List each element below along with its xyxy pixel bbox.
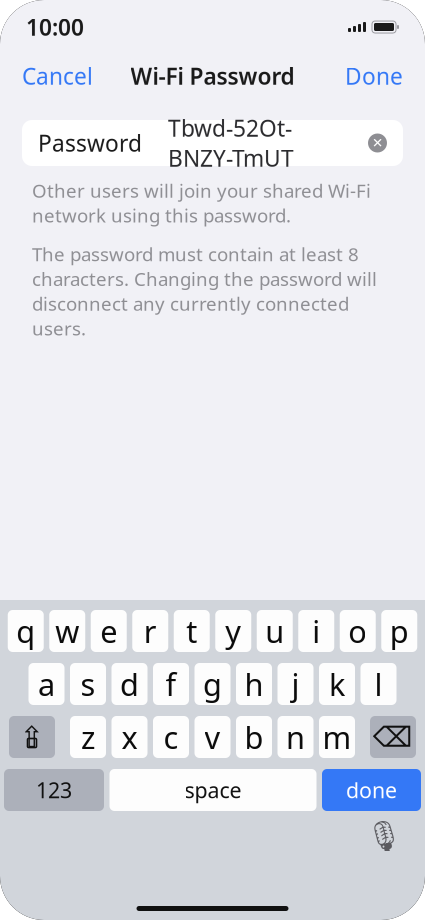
staticText: y — [225, 611, 241, 651]
staticText: l — [374, 664, 382, 704]
staticText: 🎙 — [365, 819, 402, 853]
staticText: b — [244, 717, 263, 757]
button[interactable]: Shift — [9, 716, 55, 758]
staticText: c — [163, 717, 178, 757]
button[interactable]: q — [8, 610, 44, 652]
staticText: v — [204, 717, 220, 757]
staticText: j — [291, 664, 299, 704]
staticText: Tbwd-52Ot-BNZY-TmUT — [168, 113, 294, 173]
button[interactable]: 123 — [4, 769, 104, 811]
button[interactable]: x — [111, 716, 147, 758]
staticText: Done — [345, 61, 403, 91]
button[interactable]: r — [132, 610, 168, 652]
button[interactable]: n — [277, 716, 313, 758]
button[interactable]: f — [153, 663, 189, 705]
staticText: Cancel — [22, 61, 93, 91]
staticText: s — [80, 664, 95, 704]
button[interactable]: k — [319, 663, 355, 705]
staticText: i — [312, 611, 320, 651]
staticText: m — [322, 717, 351, 757]
button[interactable]: y — [215, 610, 251, 652]
staticText: u — [265, 611, 284, 651]
button[interactable]: u — [257, 610, 293, 652]
staticText: n — [286, 717, 305, 757]
button[interactable]: i — [298, 610, 334, 652]
button[interactable]: z — [70, 716, 106, 758]
staticText: p — [390, 611, 409, 651]
button[interactable]: l — [360, 663, 396, 705]
staticText: Password — [38, 128, 142, 158]
button[interactable]: s — [70, 663, 106, 705]
button[interactable]: Delete — [370, 716, 416, 758]
staticText: w — [55, 611, 79, 651]
staticText: f — [165, 664, 176, 704]
button[interactable]: m — [319, 716, 355, 758]
button[interactable]: p — [381, 610, 417, 652]
staticText: o — [348, 611, 367, 651]
staticText: z — [81, 717, 95, 757]
button[interactable]: Clear password — [360, 127, 387, 158]
staticText: ⌫ — [373, 721, 413, 753]
button[interactable]: a — [28, 663, 64, 705]
staticText: Other users will join your shared Wi-Fi … — [32, 178, 371, 228]
button[interactable]: o — [340, 610, 376, 652]
button[interactable]: v — [194, 716, 230, 758]
button[interactable]: space — [109, 769, 316, 811]
staticText: Wi-Fi Password — [130, 61, 294, 91]
staticText: 123 — [36, 776, 72, 804]
button[interactable]: c — [153, 716, 189, 758]
button[interactable]: w — [49, 610, 85, 652]
button[interactable]: g — [194, 663, 230, 705]
staticText: ⇧ — [19, 720, 44, 754]
button[interactable]: e — [91, 610, 127, 652]
staticText: ✕ — [372, 135, 383, 150]
button[interactable]: Cancel — [18, 53, 97, 99]
button[interactable]: j — [277, 663, 313, 705]
staticText: a — [38, 664, 55, 704]
staticText: space — [184, 776, 241, 804]
staticText: d — [120, 664, 139, 704]
staticText: q — [16, 611, 35, 651]
button[interactable]: b — [236, 716, 272, 758]
staticText: e — [100, 611, 117, 651]
staticText: 10:00 — [26, 12, 84, 42]
button[interactable]: Dictate — [367, 819, 401, 853]
staticText: k — [329, 664, 345, 704]
staticText: g — [203, 664, 222, 704]
button[interactable]: Done — [341, 53, 407, 99]
button[interactable]: done — [322, 769, 421, 811]
staticText: h — [244, 664, 263, 704]
staticText: done — [346, 776, 397, 804]
button[interactable]: h — [236, 663, 272, 705]
staticText: x — [121, 717, 137, 757]
button[interactable]: d — [111, 663, 147, 705]
staticText: The password must contain at least 8 cha… — [32, 242, 377, 341]
staticText: r — [144, 611, 157, 651]
button[interactable]: t — [174, 610, 210, 652]
staticText: t — [186, 611, 197, 651]
